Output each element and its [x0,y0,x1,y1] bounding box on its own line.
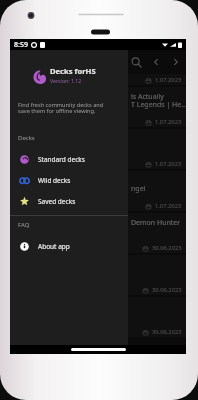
button[interactable]: Demon Hunter [10,213,186,255]
staticText: About app [38,242,70,251]
button[interactable]: Previous page [148,54,164,70]
staticText: 1.07.2023 [155,160,182,168]
button[interactable]: About app [10,236,128,257]
button[interactable]: 30.06.2023 [10,297,186,339]
staticText: 1.07.2023 [155,202,182,210]
staticText: Standard decks [38,155,85,164]
button[interactable]: Search [127,53,145,71]
button[interactable]: 1.07.2023 [10,45,186,87]
staticText: Decks [18,134,35,142]
staticText: 1.07.2023 [155,76,182,84]
staticText: Version: 1.12 [50,77,82,84]
staticText: ls Actually [131,92,164,102]
staticText: T Legends | He... [131,100,187,110]
staticText: 30.06.2023 [152,286,182,294]
staticText: FAQ [18,221,30,229]
staticText: 30.06.2023 [152,328,182,336]
staticText: ngel [131,184,146,194]
button[interactable]: Wild decks [10,170,128,191]
button[interactable]: Saved decks [10,191,128,212]
staticText: Wild decks [38,176,71,185]
staticText: Find fresh community decks and save them… [18,101,104,114]
staticText: 30.06.2023 [152,244,182,252]
staticText: Demon Hunter [131,218,181,228]
button[interactable]: ls Actually [10,87,186,129]
staticText: Saved decks [38,197,76,206]
button[interactable]: Standard decks [10,149,128,170]
button[interactable]: ngel [10,171,186,213]
staticText: 8:59 [14,40,28,50]
button[interactable]: 1.07.2023 [10,129,186,171]
button[interactable]: Next page [168,54,184,70]
staticText: 1.07.2023 [155,118,182,126]
button[interactable]: 30.06.2023 [10,255,186,297]
staticText: Decks forHS [50,66,96,76]
